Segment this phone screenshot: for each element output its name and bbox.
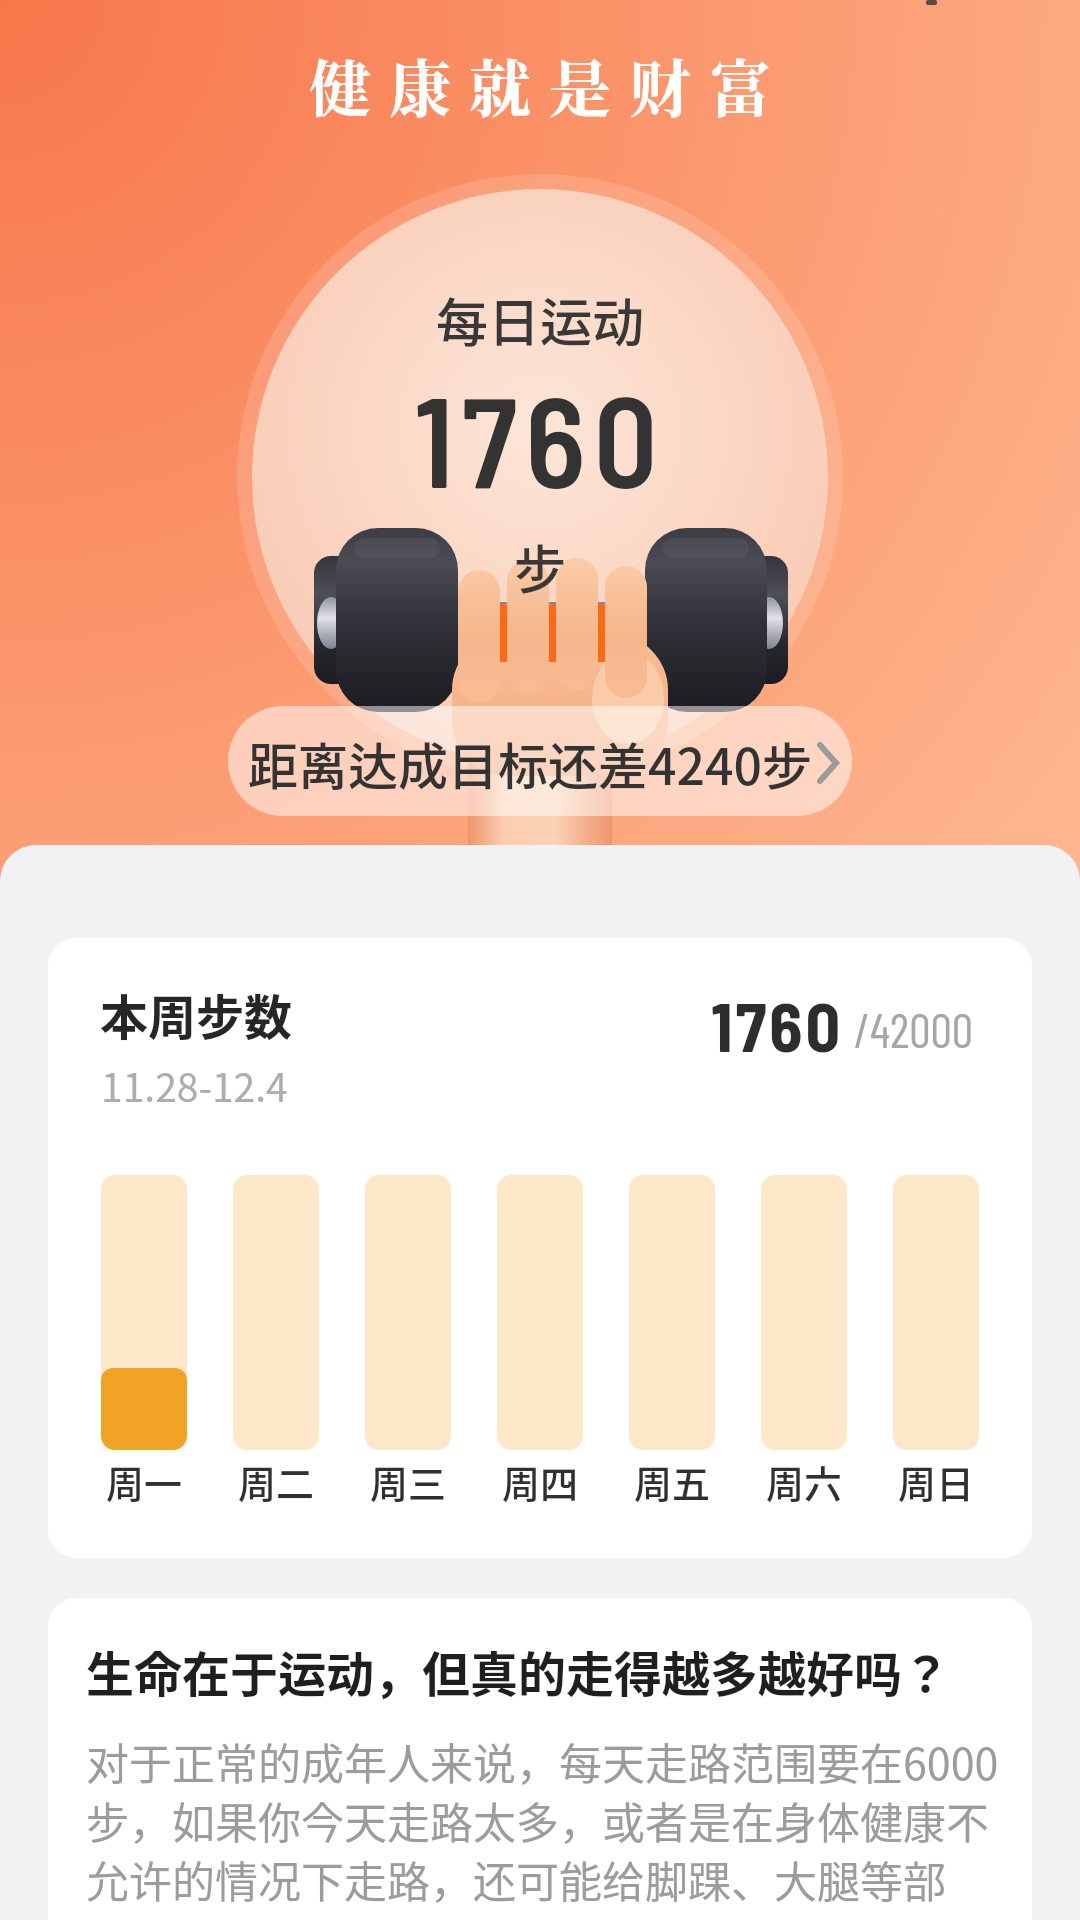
staticText: 距离达成目标还差4240步 bbox=[248, 727, 812, 799]
staticText: 周日 bbox=[898, 1454, 975, 1509]
staticText: 允许的情况下走路，还可能给脚踝、大腿等部 bbox=[86, 1848, 946, 1910]
staticText: 1760 bbox=[711, 984, 844, 1066]
staticText: 生命在于运动，但真的走得越多越好吗？ bbox=[86, 1636, 951, 1706]
staticText: 周一 bbox=[106, 1454, 183, 1509]
button[interactable]: 距离达成目标还差4240步 bbox=[228, 706, 852, 816]
staticText: 周三 bbox=[370, 1454, 447, 1509]
staticText: 对于正常的成年人来说，每天走路范围要在6000 bbox=[86, 1730, 999, 1792]
staticText: 周四 bbox=[502, 1454, 579, 1509]
button[interactable]: 生命在于运动，但真的走得越多越好吗？ bbox=[48, 1598, 1032, 1920]
staticText: 周五 bbox=[634, 1454, 711, 1509]
staticText: 周二 bbox=[238, 1454, 315, 1509]
staticText: 健康就是财富 bbox=[9, 41, 1080, 130]
staticText: 周六 bbox=[766, 1454, 843, 1509]
staticText: 步，如果你今天走路太多，或者是在身体健康不 bbox=[86, 1789, 989, 1851]
staticText: 本周步数 bbox=[100, 979, 293, 1049]
staticText: 每日运动 bbox=[0, 282, 1080, 357]
staticText: 1760 bbox=[0, 362, 1080, 513]
staticText: /42000 bbox=[854, 1000, 974, 1058]
staticText: 11.28-12.4 bbox=[101, 1057, 288, 1113]
staticText: 步 bbox=[0, 529, 1080, 604]
